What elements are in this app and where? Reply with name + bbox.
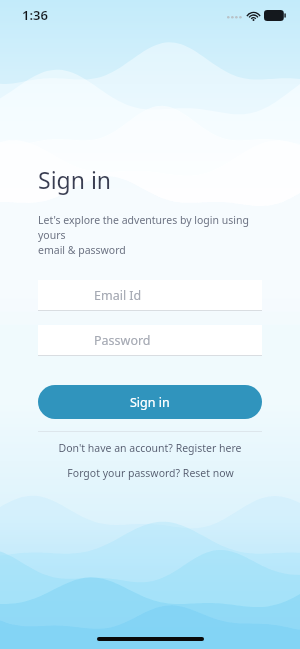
staticText: Don't have an account? Register here bbox=[58, 441, 242, 455]
staticText: Password bbox=[94, 332, 151, 349]
staticText: 1:36 bbox=[22, 6, 48, 24]
button[interactable]: Email Id bbox=[38, 280, 262, 310]
staticText: Forgot your password? Reset now bbox=[67, 466, 234, 480]
staticText: Let's explore the adventures by login us… bbox=[38, 213, 276, 257]
button[interactable]: Sign in bbox=[38, 385, 262, 419]
staticText: Sign in bbox=[130, 394, 170, 411]
button[interactable]: Password bbox=[38, 325, 262, 355]
button[interactable]: Don't have an account? Register here bbox=[38, 441, 262, 455]
staticText: Email Id bbox=[94, 287, 142, 304]
staticText: Sign in bbox=[38, 164, 112, 195]
other: Home indicator bbox=[97, 637, 204, 641]
button[interactable]: Forgot your password? Reset now bbox=[38, 466, 262, 480]
